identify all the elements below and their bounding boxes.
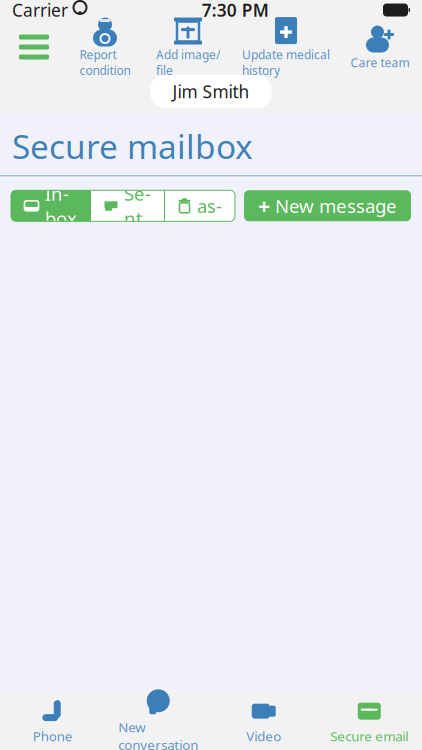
button[interactable]: Update medical history: [228, 24, 344, 70]
button[interactable]: +: [244, 190, 411, 221]
button[interactable]: Secure email: [316, 693, 422, 750]
staticText: Report condition: [79, 47, 130, 78]
button[interactable]: Trash: [165, 190, 235, 221]
button[interactable]: New conversation: [105, 693, 211, 750]
staticText: Carrier: [12, 0, 68, 21]
button[interactable]: Report condition: [62, 24, 148, 70]
staticText: Add image/file: [156, 47, 220, 78]
button[interactable]: Phone: [0, 693, 105, 750]
button[interactable]: Add image/file: [148, 24, 228, 70]
staticText: Update medical history: [242, 47, 330, 78]
button[interactable]: Care team: [344, 24, 416, 70]
staticText: Trash: [197, 169, 222, 243]
staticText: New message: [275, 193, 397, 218]
staticText: Jim Smith: [172, 80, 249, 103]
button[interactable]: Sent: [91, 190, 164, 221]
button[interactable]: Menu: [6, 24, 62, 70]
staticText: Video: [246, 727, 281, 745]
staticText: Sent: [124, 181, 151, 231]
staticText: New conversation: [118, 718, 198, 750]
button[interactable]: Jim Smith: [150, 75, 271, 108]
staticText: Phone: [33, 727, 73, 745]
staticText: +: [258, 192, 270, 220]
staticText: Secure email: [330, 727, 408, 745]
button[interactable]: Video: [211, 693, 316, 750]
staticText: Secure mailbox: [12, 124, 253, 168]
staticText: 7:30 PM: [202, 0, 269, 21]
staticText: Inbox: [45, 181, 77, 231]
button[interactable]: Inbox: [11, 190, 90, 221]
staticText: Care team: [350, 54, 409, 70]
